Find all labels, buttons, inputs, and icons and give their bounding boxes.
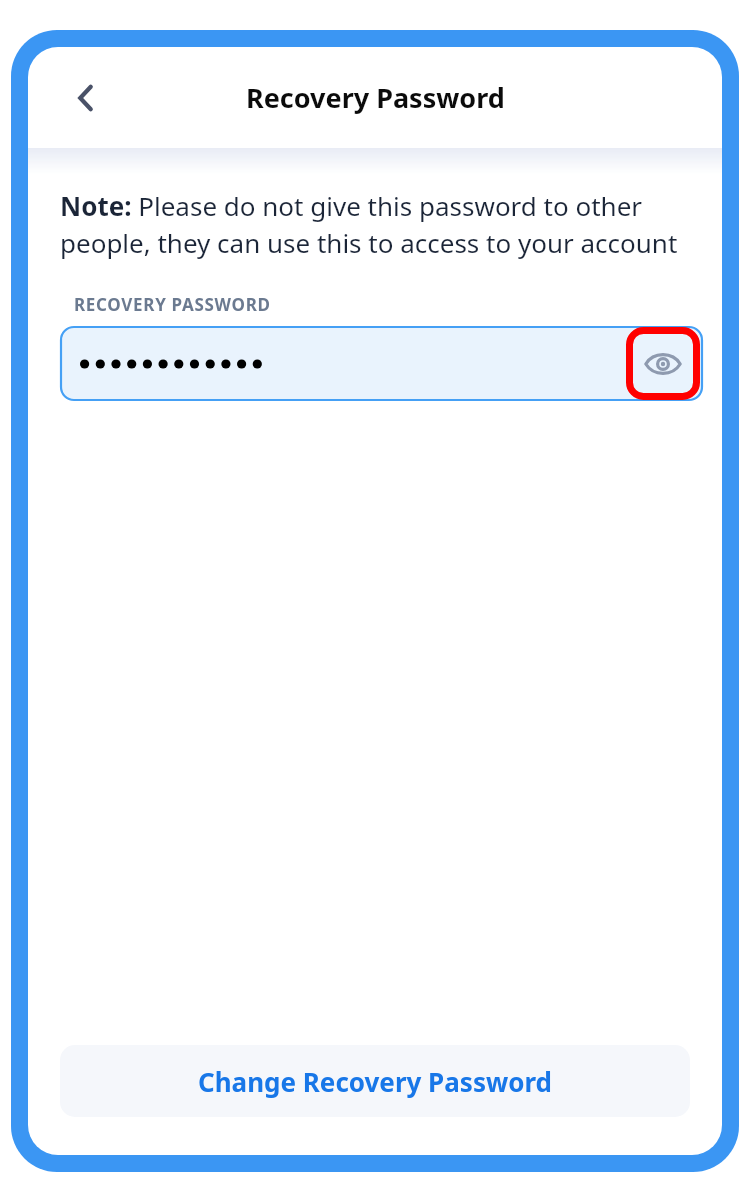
button[interactable] bbox=[61, 327, 702, 400]
staticText: Recovery Password bbox=[246, 79, 505, 116]
button[interactable]: Change Recovery Password bbox=[60, 1045, 690, 1117]
button[interactable]: Show password bbox=[626, 327, 700, 400]
staticText: Note: Please do not give this password t… bbox=[60, 188, 696, 261]
staticText: RECOVERY PASSWORD bbox=[74, 293, 271, 316]
staticText: Change Recovery Password bbox=[198, 1064, 552, 1099]
button[interactable]: Back bbox=[58, 70, 114, 126]
